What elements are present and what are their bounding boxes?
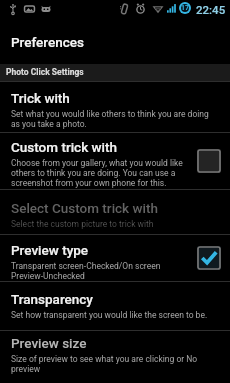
button[interactable]: Transparency	[0, 282, 230, 330]
button[interactable]: Trick with	[0, 82, 230, 132]
button[interactable]: Preview type	[0, 235, 230, 281]
staticText: Choose from your gallery, what you would…	[11, 158, 187, 188]
staticText: Preview size	[11, 335, 87, 351]
button[interactable]: Preview size	[0, 331, 230, 379]
staticText: Transparent screen-Checked/On screen Pre…	[11, 261, 187, 281]
button[interactable]: Select Custom trick with	[0, 190, 230, 234]
staticText: 17	[181, 4, 190, 12]
staticText: Preview type	[11, 242, 89, 258]
staticText: Trick with	[11, 90, 70, 106]
staticText: Preferences	[11, 34, 84, 50]
staticText: Size of preview to see what you are clic…	[11, 354, 215, 374]
button[interactable]: Unchecked	[197, 149, 221, 173]
staticText: Set how transparent you would like the s…	[11, 310, 208, 320]
staticText: Select Custom trick with	[11, 200, 158, 216]
staticText: Photo Click Settings	[6, 67, 84, 77]
staticText: Set what you would like others to think …	[11, 109, 215, 129]
staticText: Select the custom picture to trick with	[11, 219, 154, 229]
staticText: Custom trick with	[11, 139, 117, 155]
staticText: 22:45	[196, 3, 226, 16]
button[interactable]: Custom trick with	[0, 133, 230, 189]
staticText: Transparency	[11, 291, 93, 307]
button[interactable]: Checked	[197, 246, 221, 270]
